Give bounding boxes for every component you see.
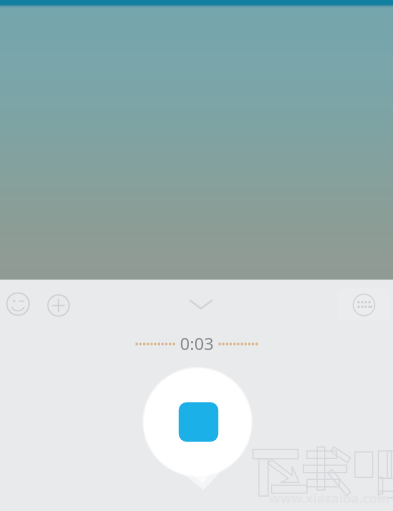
button[interactable]: Keyboard	[337, 288, 390, 321]
button[interactable]: Emoji	[2, 288, 34, 320]
button[interactable]: Stop recording	[134, 359, 261, 495]
button[interactable]: More	[42, 289, 74, 321]
staticText: www.xiazaiba.com	[269, 489, 390, 507]
button[interactable]: Collapse panel	[184, 293, 217, 315]
staticText: 0:03	[180, 332, 214, 355]
